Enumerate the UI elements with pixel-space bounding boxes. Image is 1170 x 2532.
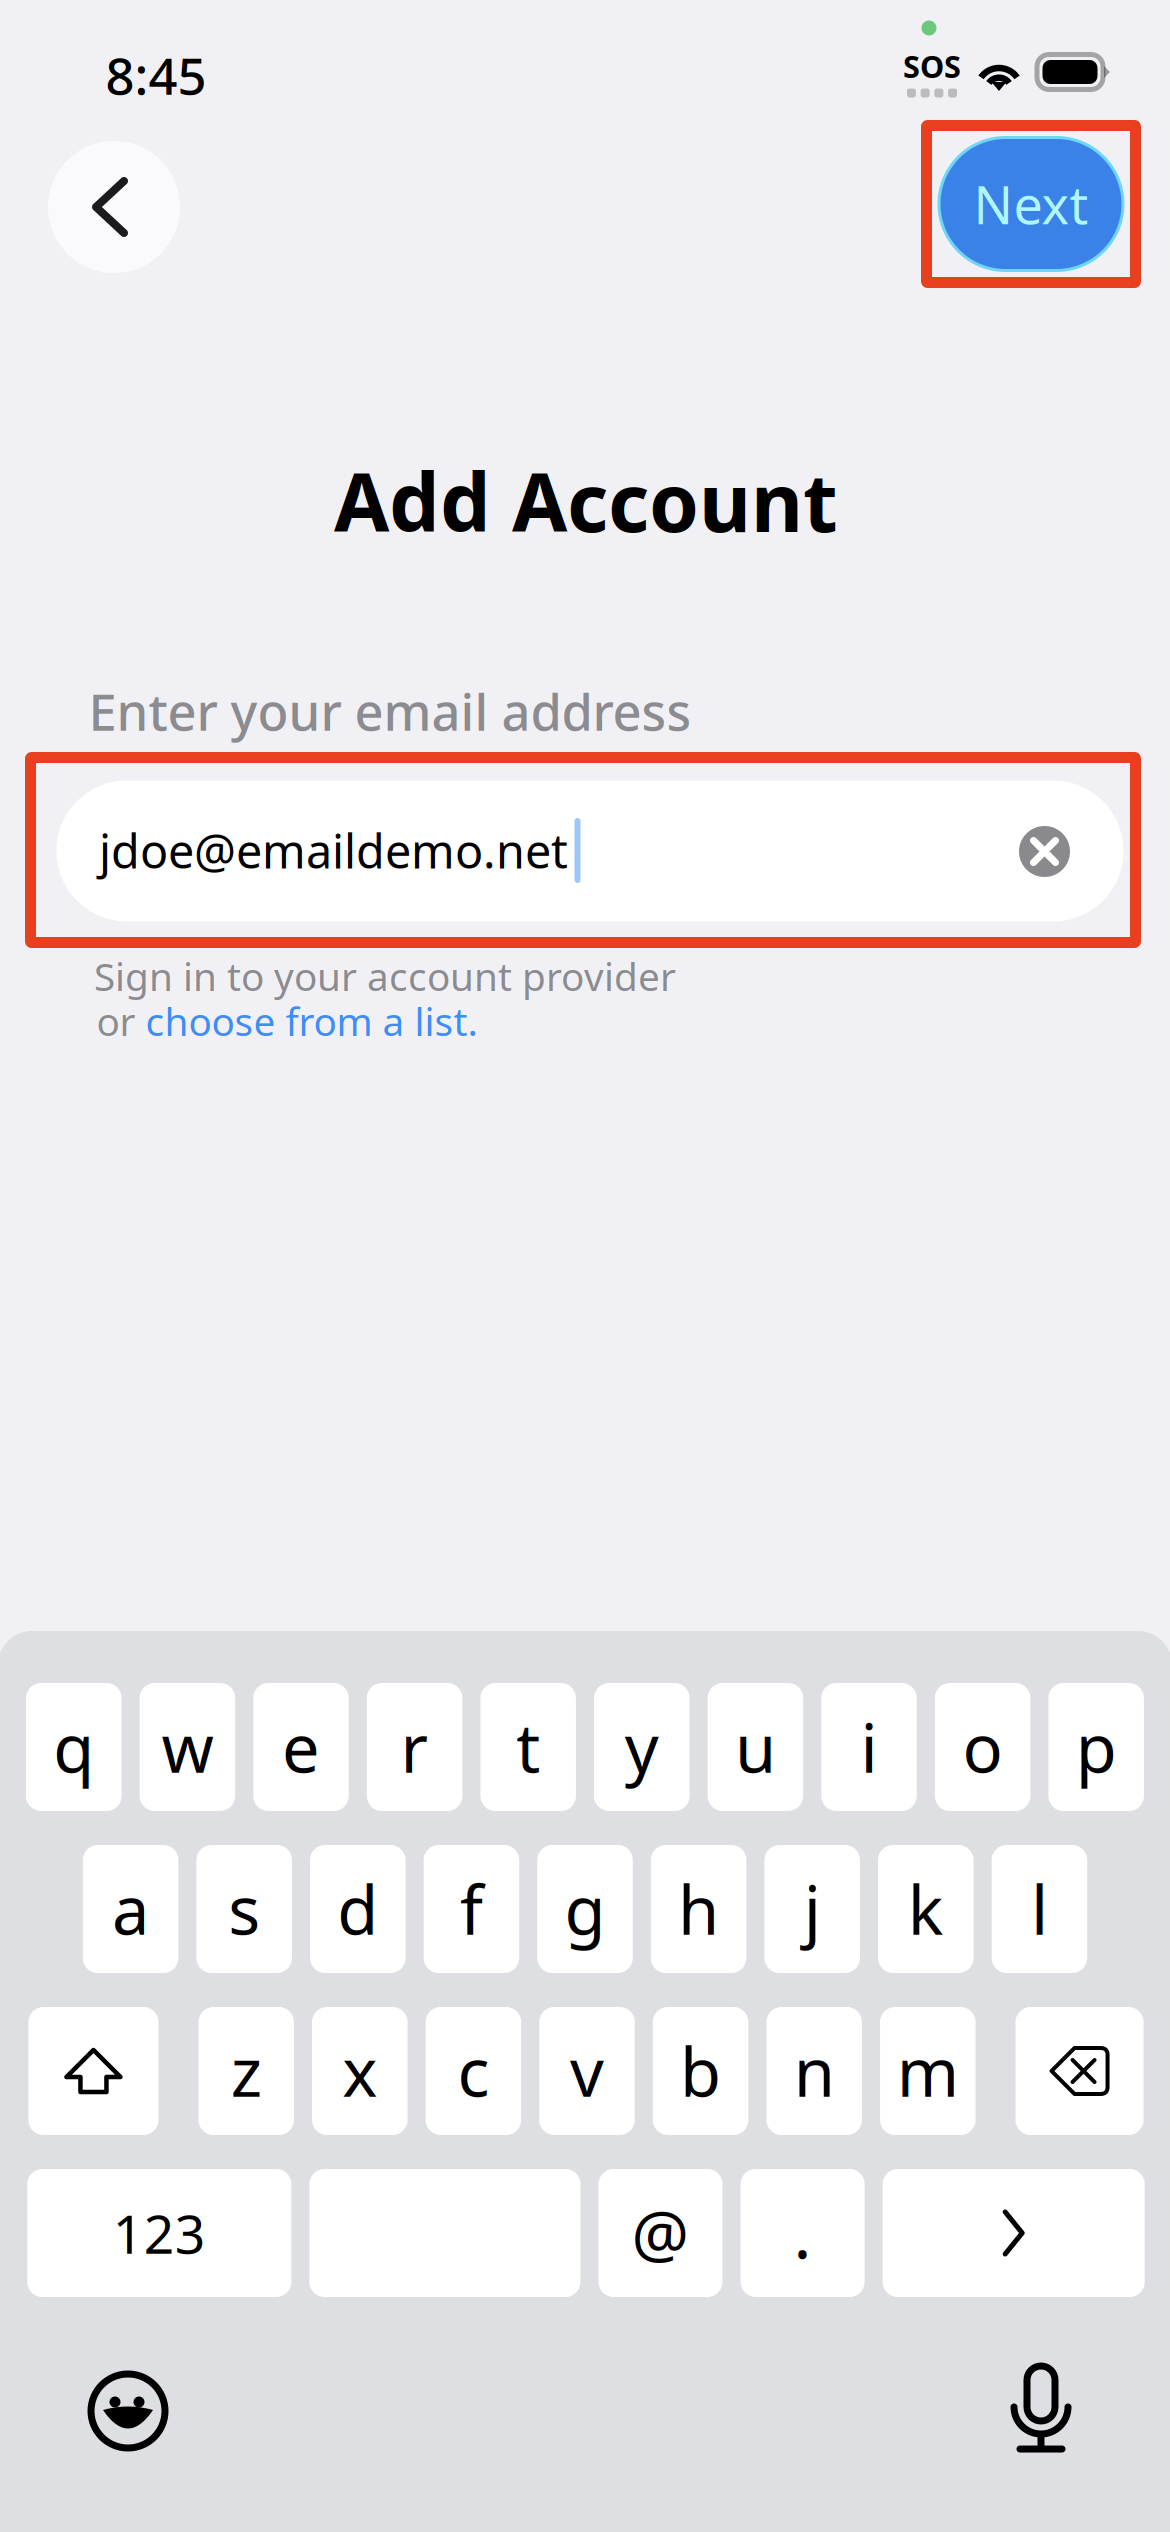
button[interactable]: jdoe@emaildemo.net bbox=[56, 780, 1123, 921]
staticText: v bbox=[570, 2027, 604, 2115]
staticText: a bbox=[112, 1865, 149, 1953]
staticText: y bbox=[625, 1703, 659, 1791]
staticText: x bbox=[342, 2027, 377, 2115]
button[interactable]: g bbox=[537, 1845, 633, 1973]
staticText: q bbox=[53, 1703, 94, 1791]
staticText: h bbox=[678, 1865, 719, 1953]
button[interactable]: c bbox=[426, 2007, 521, 2135]
button[interactable]: . bbox=[741, 2169, 865, 2297]
button[interactable]: @ bbox=[598, 2169, 722, 2297]
button[interactable]: Back bbox=[48, 141, 180, 273]
staticText: 123 bbox=[113, 2198, 206, 2268]
button[interactable]: n bbox=[766, 2007, 862, 2135]
staticText: Enter your email address bbox=[88, 677, 691, 745]
button[interactable]: x bbox=[312, 2007, 408, 2135]
staticText: p bbox=[1076, 1703, 1117, 1791]
button[interactable]: l bbox=[992, 1845, 1087, 1973]
button[interactable]: o bbox=[935, 1683, 1030, 1811]
button[interactable]: e bbox=[253, 1683, 349, 1811]
staticText: g bbox=[564, 1865, 605, 1953]
button[interactable]: m bbox=[880, 2007, 976, 2135]
staticText: l bbox=[1031, 1865, 1048, 1953]
staticText: . bbox=[794, 2189, 812, 2277]
button[interactable]: s bbox=[196, 1845, 292, 1973]
staticText: m bbox=[897, 2027, 959, 2115]
staticText: i bbox=[860, 1703, 877, 1791]
staticText: d bbox=[337, 1865, 378, 1953]
staticText: or bbox=[96, 995, 145, 1047]
button[interactable]: p bbox=[1048, 1683, 1144, 1811]
button[interactable]: u bbox=[708, 1683, 803, 1811]
staticText: n bbox=[794, 2027, 835, 2115]
button[interactable]: Emoji bbox=[88, 2371, 168, 2451]
button[interactable]: Next bbox=[921, 120, 1141, 288]
staticText: s bbox=[228, 1865, 260, 1953]
staticText: w bbox=[161, 1703, 213, 1791]
staticText: Next bbox=[973, 169, 1088, 239]
staticText: u bbox=[735, 1703, 776, 1791]
button[interactable]: k bbox=[878, 1845, 974, 1973]
button[interactable]: j bbox=[764, 1845, 860, 1973]
staticText: Sign in to your account provider bbox=[94, 950, 676, 1002]
button[interactable]: t bbox=[480, 1683, 576, 1811]
button[interactable]: r bbox=[367, 1683, 462, 1811]
staticText: jdoe@emaildemo.net bbox=[99, 819, 568, 881]
button[interactable]: a bbox=[83, 1845, 178, 1973]
button[interactable]: 123 bbox=[27, 2169, 291, 2297]
staticText: e bbox=[282, 1703, 320, 1791]
staticText: t bbox=[516, 1703, 540, 1791]
button[interactable]: b bbox=[653, 2007, 748, 2135]
staticText: choose from a list. bbox=[145, 995, 477, 1047]
button[interactable]: Go bbox=[883, 2169, 1145, 2297]
button[interactable]: h bbox=[651, 1845, 746, 1973]
staticText: f bbox=[460, 1865, 483, 1953]
staticText: j bbox=[804, 1865, 821, 1953]
staticText: b bbox=[680, 2027, 721, 2115]
staticText: SOS bbox=[903, 46, 961, 86]
staticText: c bbox=[457, 2027, 489, 2115]
staticText: o bbox=[963, 1703, 1003, 1791]
staticText: Add Account bbox=[334, 448, 838, 554]
button[interactable]: choose from a list. bbox=[145, 995, 477, 1047]
button[interactable]: w bbox=[140, 1683, 235, 1811]
button[interactable]: z bbox=[198, 2007, 294, 2135]
button[interactable]: q bbox=[26, 1683, 121, 1811]
button[interactable]: d bbox=[310, 1845, 406, 1973]
staticText: z bbox=[231, 2027, 262, 2115]
button[interactable]: f bbox=[424, 1845, 519, 1973]
staticText: @ bbox=[631, 2190, 689, 2275]
button[interactable]: i bbox=[821, 1683, 917, 1811]
button[interactable]: Delete bbox=[1016, 2007, 1144, 2135]
button[interactable]: v bbox=[539, 2007, 635, 2135]
button[interactable]: Shift bbox=[28, 2007, 158, 2135]
staticText: 8:45 bbox=[105, 41, 206, 109]
button[interactable]: y bbox=[594, 1683, 689, 1811]
staticText: r bbox=[401, 1703, 429, 1791]
staticText: k bbox=[908, 1865, 944, 1953]
button[interactable]: Dictate bbox=[1013, 2363, 1069, 2455]
